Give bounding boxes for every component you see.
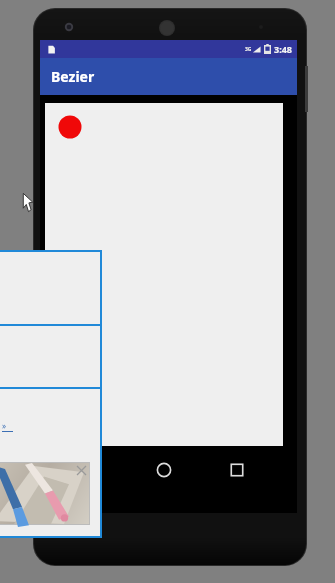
- button[interactable]: Close: [0, 463, 89, 524]
- button[interactable]: Home: [153, 459, 175, 481]
- staticText: »: [2, 420, 7, 431]
- button[interactable]: »: [2, 420, 13, 432]
- staticText: 3:48: [274, 43, 292, 55]
- button[interactable]: Bezier: [40, 58, 297, 95]
- button[interactable]: Close: [77, 466, 86, 475]
- staticText: 3G: [245, 46, 252, 53]
- button[interactable]: Recent apps: [226, 459, 248, 481]
- staticText: Bezier: [51, 67, 95, 86]
